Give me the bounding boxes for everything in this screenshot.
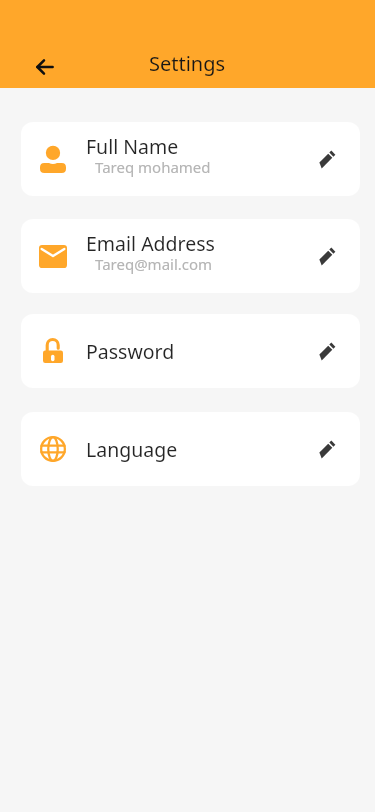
staticText: Email Address [86, 230, 215, 257]
staticText: Language [86, 436, 178, 463]
button[interactable]: Edit Email Address [317, 247, 336, 266]
staticText: Settings [149, 50, 226, 77]
button[interactable]: Password [21, 314, 360, 388]
staticText: Full Name [86, 133, 179, 160]
staticText: Password [86, 338, 175, 365]
button[interactable]: Full Name [21, 122, 360, 196]
button[interactable]: Language [21, 412, 360, 486]
button[interactable]: Email Address [21, 219, 360, 293]
button[interactable]: Edit Language [317, 440, 336, 459]
staticText: Tareq mohamed [95, 157, 211, 177]
button[interactable]: Back [25, 47, 65, 87]
button[interactable]: Edit Password [317, 342, 336, 361]
button[interactable]: Edit Full Name [317, 150, 336, 169]
staticText: Tareq@mail.com [95, 254, 213, 274]
